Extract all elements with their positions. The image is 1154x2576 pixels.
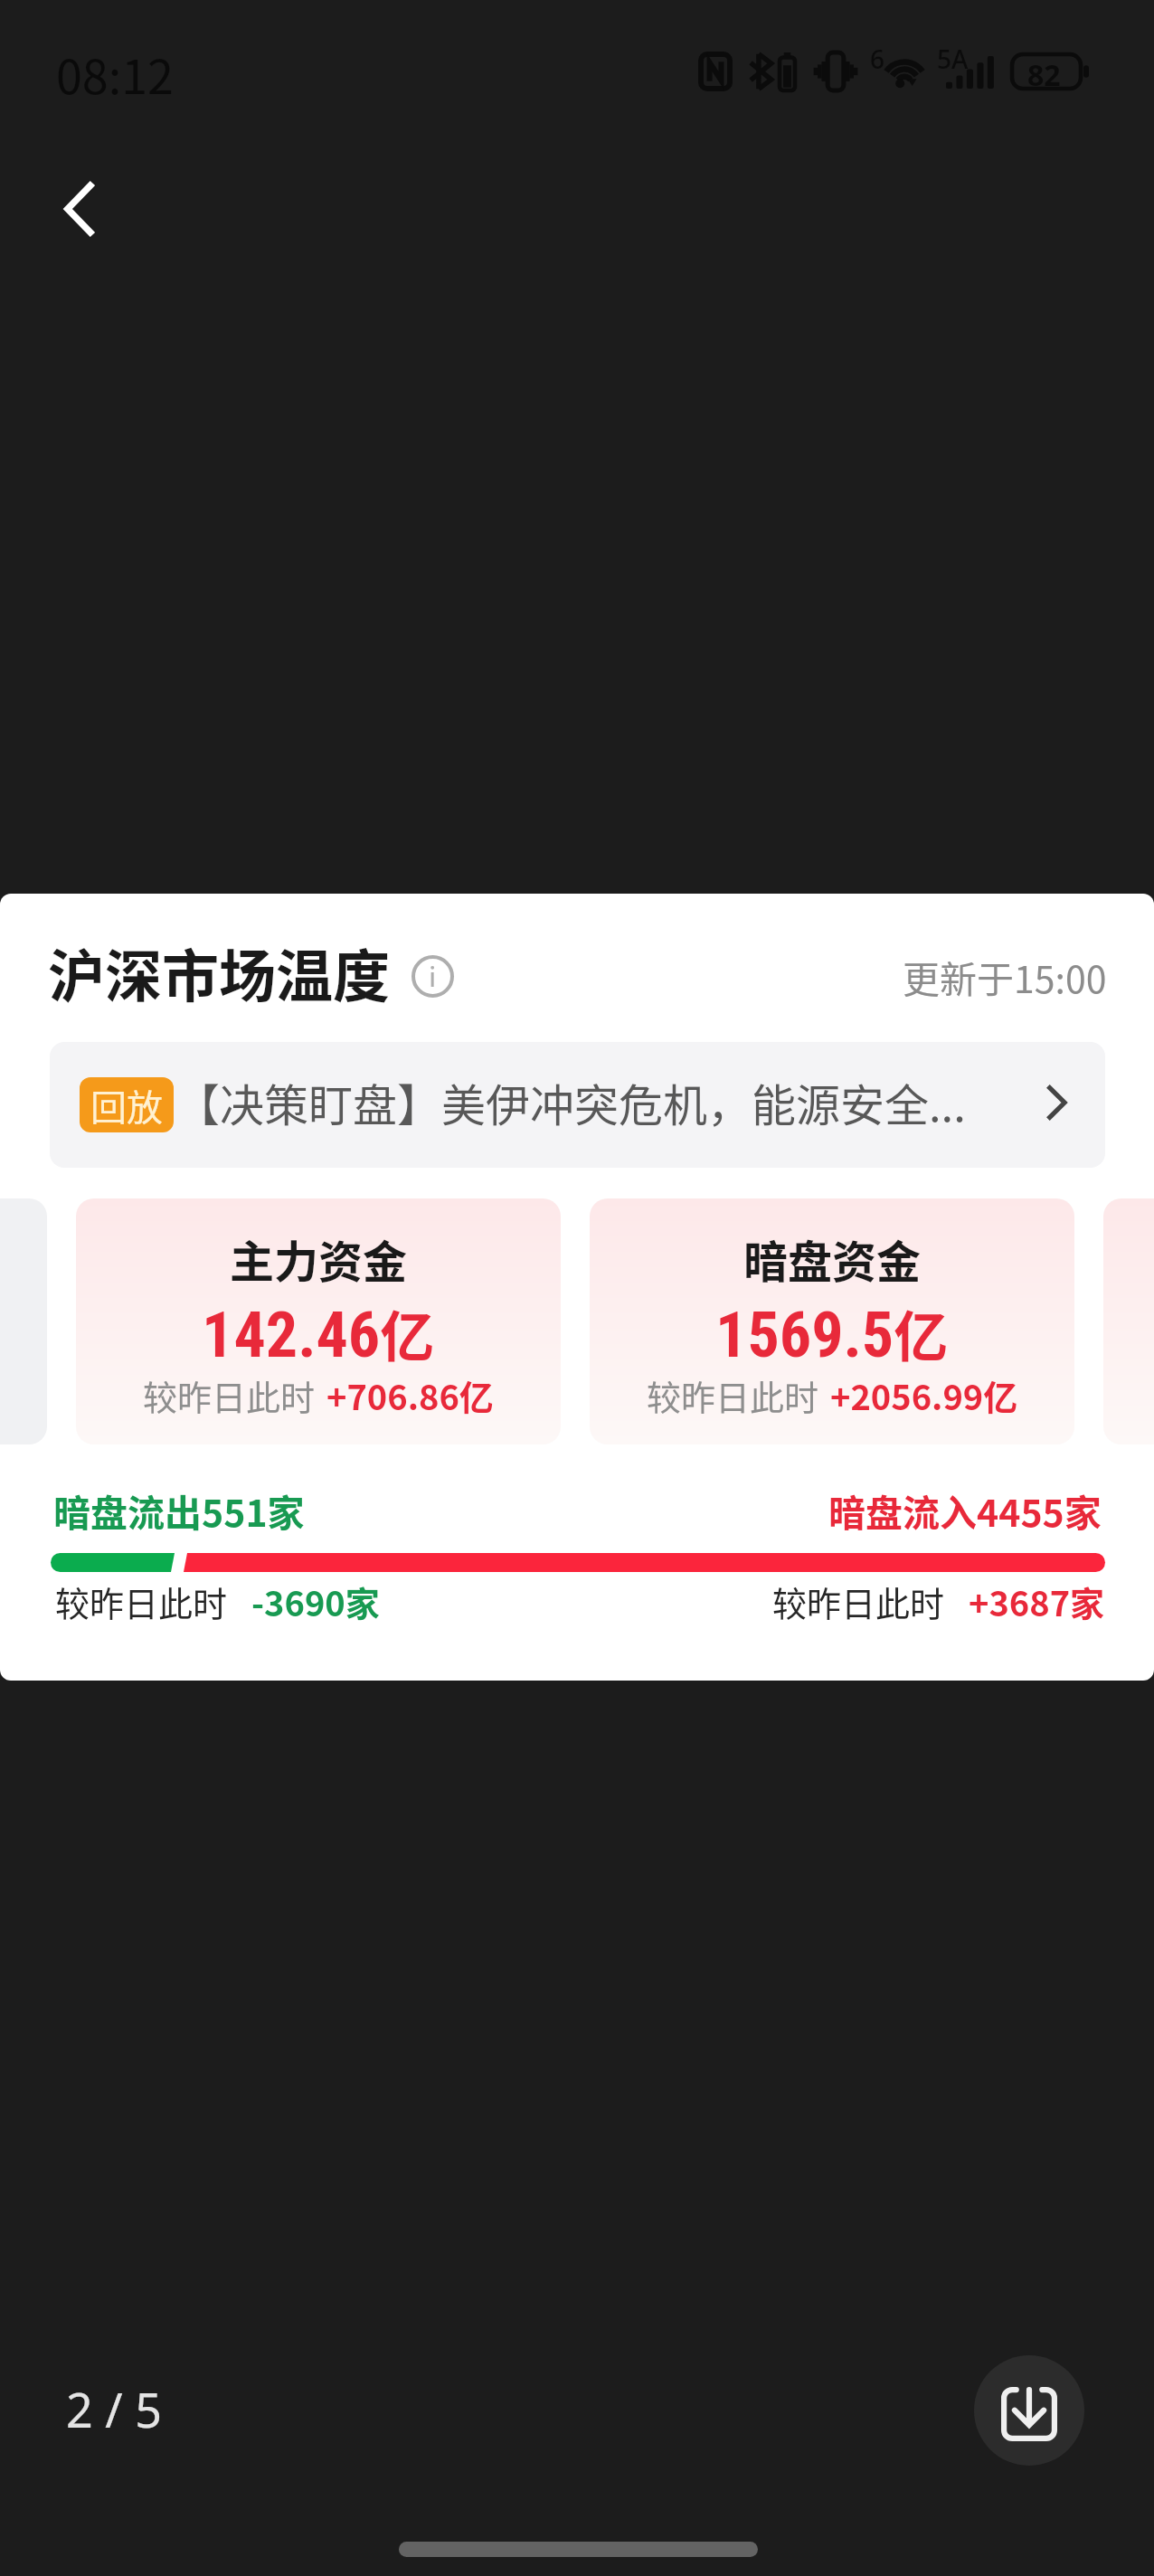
staticText: 较昨日此时 [143, 1370, 316, 1420]
staticText: 主力资金 [230, 1226, 408, 1291]
staticText: 82 [1027, 55, 1061, 95]
staticText: 6 [870, 42, 885, 76]
staticText: +2056.99亿 [830, 1370, 1018, 1420]
staticText: 暗盘流出551家 [53, 1483, 305, 1537]
staticText: 5A [937, 42, 969, 76]
staticText: 沪深市场温度 [48, 931, 390, 1013]
staticText: 2 / 5 [66, 2377, 162, 2441]
staticText: 暗盘流入4455家 [828, 1483, 1102, 1537]
button[interactable]: 主力资金 [76, 1198, 561, 1444]
staticText: +3687家 [969, 1577, 1105, 1626]
button[interactable]: 回放 [50, 1042, 1105, 1168]
staticText: 暗盘资金 [743, 1226, 922, 1291]
staticText: 【决策盯盘】美伊冲突危机，能源安全... [175, 1070, 966, 1134]
button[interactable]: 暗盘资金 [590, 1198, 1074, 1444]
staticText: 08:12 [56, 40, 174, 108]
button[interactable]: Download [974, 2355, 1084, 2466]
staticText: 较昨日此时 [55, 1577, 228, 1626]
staticText: 较昨日此时 [647, 1370, 819, 1420]
staticText: -3690家 [251, 1577, 380, 1626]
button[interactable]: Back [24, 155, 133, 263]
button[interactable]: Info [408, 952, 457, 1000]
staticText: i [429, 955, 437, 994]
staticText: 较昨日此时 [772, 1577, 945, 1626]
staticText: 142.46亿 [202, 1293, 435, 1372]
staticText: 更新于15:00 [903, 950, 1107, 1003]
staticText: 1569.5亿 [715, 1293, 949, 1372]
staticText: 回放 [90, 1079, 163, 1132]
staticText: +706.86亿 [326, 1370, 494, 1420]
